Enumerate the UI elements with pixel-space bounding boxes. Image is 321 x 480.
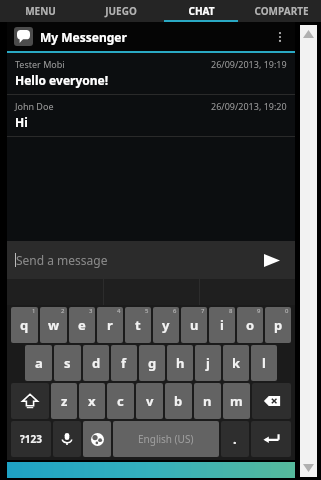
staticText: . [233, 430, 237, 448]
button[interactable]: CHAT [161, 0, 241, 22]
button[interactable]: k [223, 345, 249, 381]
button[interactable]: a [25, 345, 52, 381]
staticText: 26/09/2013, 19:20 [211, 100, 287, 112]
staticText: Hi [15, 114, 28, 130]
staticText: u [190, 316, 199, 334]
staticText: 6 [173, 307, 177, 315]
button[interactable]: n [194, 383, 221, 419]
button[interactable]: COMPARTE [241, 0, 321, 22]
staticText: a [35, 354, 43, 372]
staticText: g [148, 354, 157, 372]
button[interactable]: More options [272, 22, 288, 51]
staticText: 0 [285, 307, 289, 315]
staticText: r [107, 316, 113, 334]
staticText: z [61, 392, 68, 410]
button[interactable]: e [69, 307, 95, 343]
button[interactable]: x [79, 383, 105, 419]
staticText: Tester Mobi [15, 58, 65, 70]
button[interactable]: g [139, 345, 165, 381]
staticText: i [220, 316, 224, 334]
button[interactable]: Shift [11, 383, 49, 419]
button[interactable]: d [83, 345, 109, 381]
button[interactable]: JUEGO [81, 0, 161, 22]
staticText: Send a message [16, 252, 108, 268]
staticText: h [176, 354, 185, 372]
button[interactable] [7, 462, 295, 478]
button[interactable]: . [221, 421, 249, 457]
staticText: ?123 [20, 432, 42, 446]
staticText: Hello everyone! [15, 72, 109, 88]
button[interactable]: l [251, 345, 277, 381]
button[interactable]: z [51, 383, 77, 419]
button[interactable]: English (US) [113, 421, 219, 457]
button[interactable]: MENU [0, 0, 81, 22]
button[interactable]: Scroll [300, 25, 317, 477]
staticText: MENU [25, 4, 56, 18]
staticText: w [48, 316, 60, 334]
button[interactable]: t [125, 307, 151, 343]
staticText: s [64, 354, 71, 372]
staticText: j [206, 354, 210, 372]
staticText: 9 [257, 307, 261, 315]
staticText: 26/09/2013, 19:19 [211, 58, 287, 70]
button[interactable]: John Doe [7, 95, 295, 136]
staticText: John Doe [15, 100, 54, 112]
staticText: COMPARTE [254, 4, 309, 18]
staticText: t [135, 316, 141, 334]
button[interactable]: y [153, 307, 179, 343]
staticText: y [162, 316, 170, 334]
staticText: n [203, 392, 212, 410]
button[interactable]: c [107, 383, 134, 419]
staticText: k [232, 354, 241, 372]
staticText: CHAT [188, 4, 215, 18]
staticText: 1 [32, 307, 36, 315]
staticText: e [78, 316, 86, 334]
button[interactable]: Tester Mobi [7, 53, 295, 94]
staticText: 7 [201, 307, 205, 315]
button[interactable]: r [97, 307, 123, 343]
staticText: f [121, 354, 127, 372]
staticText: l [262, 354, 266, 372]
staticText: p [274, 316, 283, 334]
button[interactable]: Change language [83, 421, 111, 457]
button[interactable]: w [40, 307, 67, 343]
button[interactable]: ?123 [11, 421, 51, 457]
staticText: 8 [229, 307, 233, 315]
button[interactable]: Send [257, 245, 287, 275]
button[interactable]: h [167, 345, 193, 381]
staticText: o [246, 316, 255, 334]
button[interactable]: q [11, 307, 38, 343]
button[interactable]: j [195, 345, 221, 381]
staticText: b [174, 392, 183, 410]
button[interactable]: f [111, 345, 137, 381]
staticText: My Messenger [40, 29, 127, 45]
staticText: English (US) [138, 432, 194, 446]
button[interactable]: Send a message [15, 241, 257, 279]
staticText: 2 [61, 307, 65, 315]
staticText: c [117, 392, 124, 410]
button[interactable]: u [181, 307, 207, 343]
button[interactable]: v [136, 383, 163, 419]
staticText: 3 [89, 307, 93, 315]
button[interactable]: m [223, 383, 250, 419]
button[interactable]: p [265, 307, 291, 343]
button[interactable]: Backspace [252, 383, 291, 419]
button[interactable]: Voice input [53, 421, 81, 457]
staticText: x [88, 392, 96, 410]
staticText: q [20, 316, 29, 334]
staticText: v [146, 392, 154, 410]
button[interactable]: Enter [251, 421, 291, 457]
staticText: m [230, 392, 243, 410]
staticText: JUEGO [105, 4, 137, 18]
staticText: 5 [145, 307, 149, 315]
button[interactable]: i [209, 307, 235, 343]
staticText: d [92, 354, 101, 372]
button[interactable]: o [237, 307, 263, 343]
button[interactable]: s [54, 345, 81, 381]
staticText: 4 [117, 307, 121, 315]
button[interactable]: b [165, 383, 192, 419]
